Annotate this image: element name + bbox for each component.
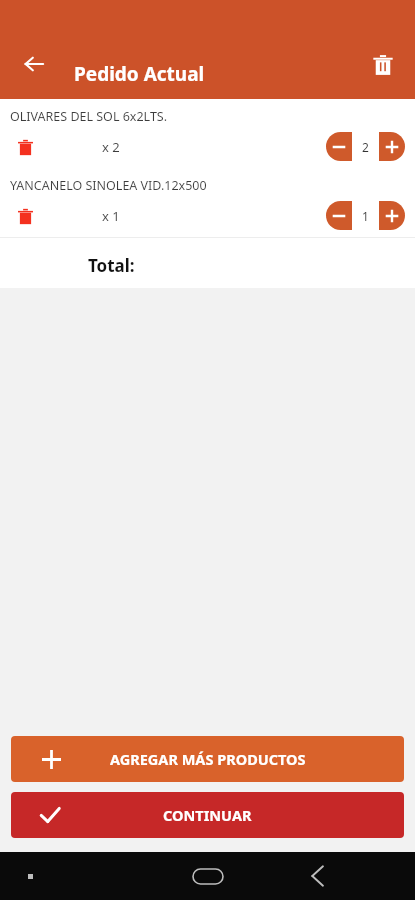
button[interactable]: CONTINUAR	[11, 792, 404, 838]
button[interactable]: YANCANELO SINOLEA VID.12x500	[0, 168, 415, 237]
staticText: 1	[362, 208, 369, 224]
button[interactable]: Increase quantity	[379, 201, 405, 230]
button[interactable]: Delete order	[361, 43, 405, 87]
button[interactable]: Decrease quantity	[326, 201, 352, 230]
staticText: x 2	[102, 138, 120, 156]
staticText: Total:	[88, 254, 135, 277]
button[interactable]: Decrease quantity	[326, 132, 352, 161]
button[interactable]: Back	[12, 42, 56, 86]
button[interactable]: AGREGAR MÁS PRODUCTOS	[11, 736, 404, 782]
staticText: YANCANELO SINOLEA VID.12x500	[10, 177, 207, 194]
staticText: x 1	[102, 207, 120, 225]
button[interactable]: Back	[297, 856, 337, 896]
button[interactable]: Home	[186, 856, 230, 896]
staticText: Pedido Actual	[74, 61, 205, 87]
button[interactable]: Increase quantity	[379, 132, 405, 161]
staticText: CONTINUAR	[163, 805, 252, 825]
button[interactable]: Recents	[10, 856, 50, 896]
staticText: AGREGAR MÁS PRODUCTOS	[110, 749, 306, 769]
staticText: 2	[362, 139, 369, 155]
staticText: OLIVARES DEL SOL 6x2LTS.	[10, 108, 168, 125]
button[interactable]: Remove item	[10, 132, 40, 162]
button[interactable]: Remove item	[10, 201, 40, 231]
button[interactable]: OLIVARES DEL SOL 6x2LTS.	[0, 99, 415, 168]
